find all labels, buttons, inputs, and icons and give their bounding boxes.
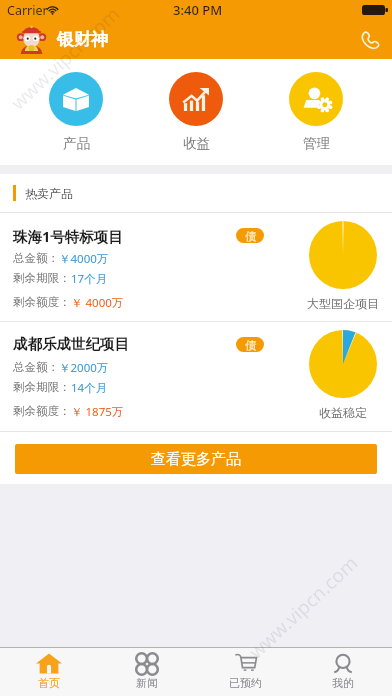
staticText: Carrier	[7, 2, 48, 19]
staticText: www.vipcn.com	[243, 550, 363, 664]
button[interactable]: 收益	[169, 72, 223, 152]
staticText: 热卖产品	[25, 186, 73, 201]
staticText: 已预约	[229, 676, 262, 690]
staticText: 我的	[332, 676, 354, 690]
staticText: 剩余额度：	[13, 295, 71, 309]
staticText: 成都乐成世纪项目	[13, 335, 129, 353]
button[interactable]: 首页	[0, 648, 98, 696]
staticText: 收益稳定	[319, 405, 367, 420]
staticText: www.vipcn.com	[5, 1, 125, 115]
staticText: ￥ 4000万	[71, 295, 124, 311]
staticText: 银财神	[57, 29, 108, 50]
staticText: 产品	[63, 135, 90, 152]
button[interactable]: 管理	[289, 72, 343, 152]
button[interactable]: 已预约	[196, 648, 294, 696]
staticText: ￥4000万	[59, 251, 109, 267]
staticText: 债	[245, 229, 256, 243]
staticText: 剩余额度：	[13, 404, 71, 418]
staticText: ￥ 1875万	[71, 404, 124, 420]
staticText: 17个月	[71, 271, 108, 287]
staticText: 大型国企项目	[307, 296, 379, 311]
staticText: 剩余期限：	[13, 271, 71, 285]
staticText: 债	[245, 338, 256, 352]
staticText: 新闻	[136, 676, 158, 690]
staticText: 珠海1号特标项目	[13, 226, 123, 246]
staticText: 首页	[38, 676, 60, 690]
staticText: 总金额：	[13, 360, 59, 374]
button[interactable]: 我的	[294, 648, 392, 696]
staticText: 14个月	[71, 380, 108, 396]
staticText: 管理	[303, 135, 330, 152]
staticText: 剩余期限：	[13, 380, 71, 394]
button[interactable]: 成都乐成世纪项目	[0, 322, 392, 431]
staticText: 3:40 PM	[173, 1, 223, 19]
button[interactable]: 新闻	[98, 648, 196, 696]
staticText: 查看更多产品	[151, 450, 241, 469]
button[interactable]: 查看更多产品	[15, 444, 377, 474]
button[interactable]: Call	[354, 24, 384, 54]
staticText: 总金额：	[13, 251, 59, 265]
button[interactable]: 产品	[49, 72, 103, 152]
staticText: ￥2000万	[59, 360, 109, 376]
staticText: 收益	[183, 135, 210, 152]
button[interactable]: 珠海1号特标项目	[0, 213, 392, 321]
